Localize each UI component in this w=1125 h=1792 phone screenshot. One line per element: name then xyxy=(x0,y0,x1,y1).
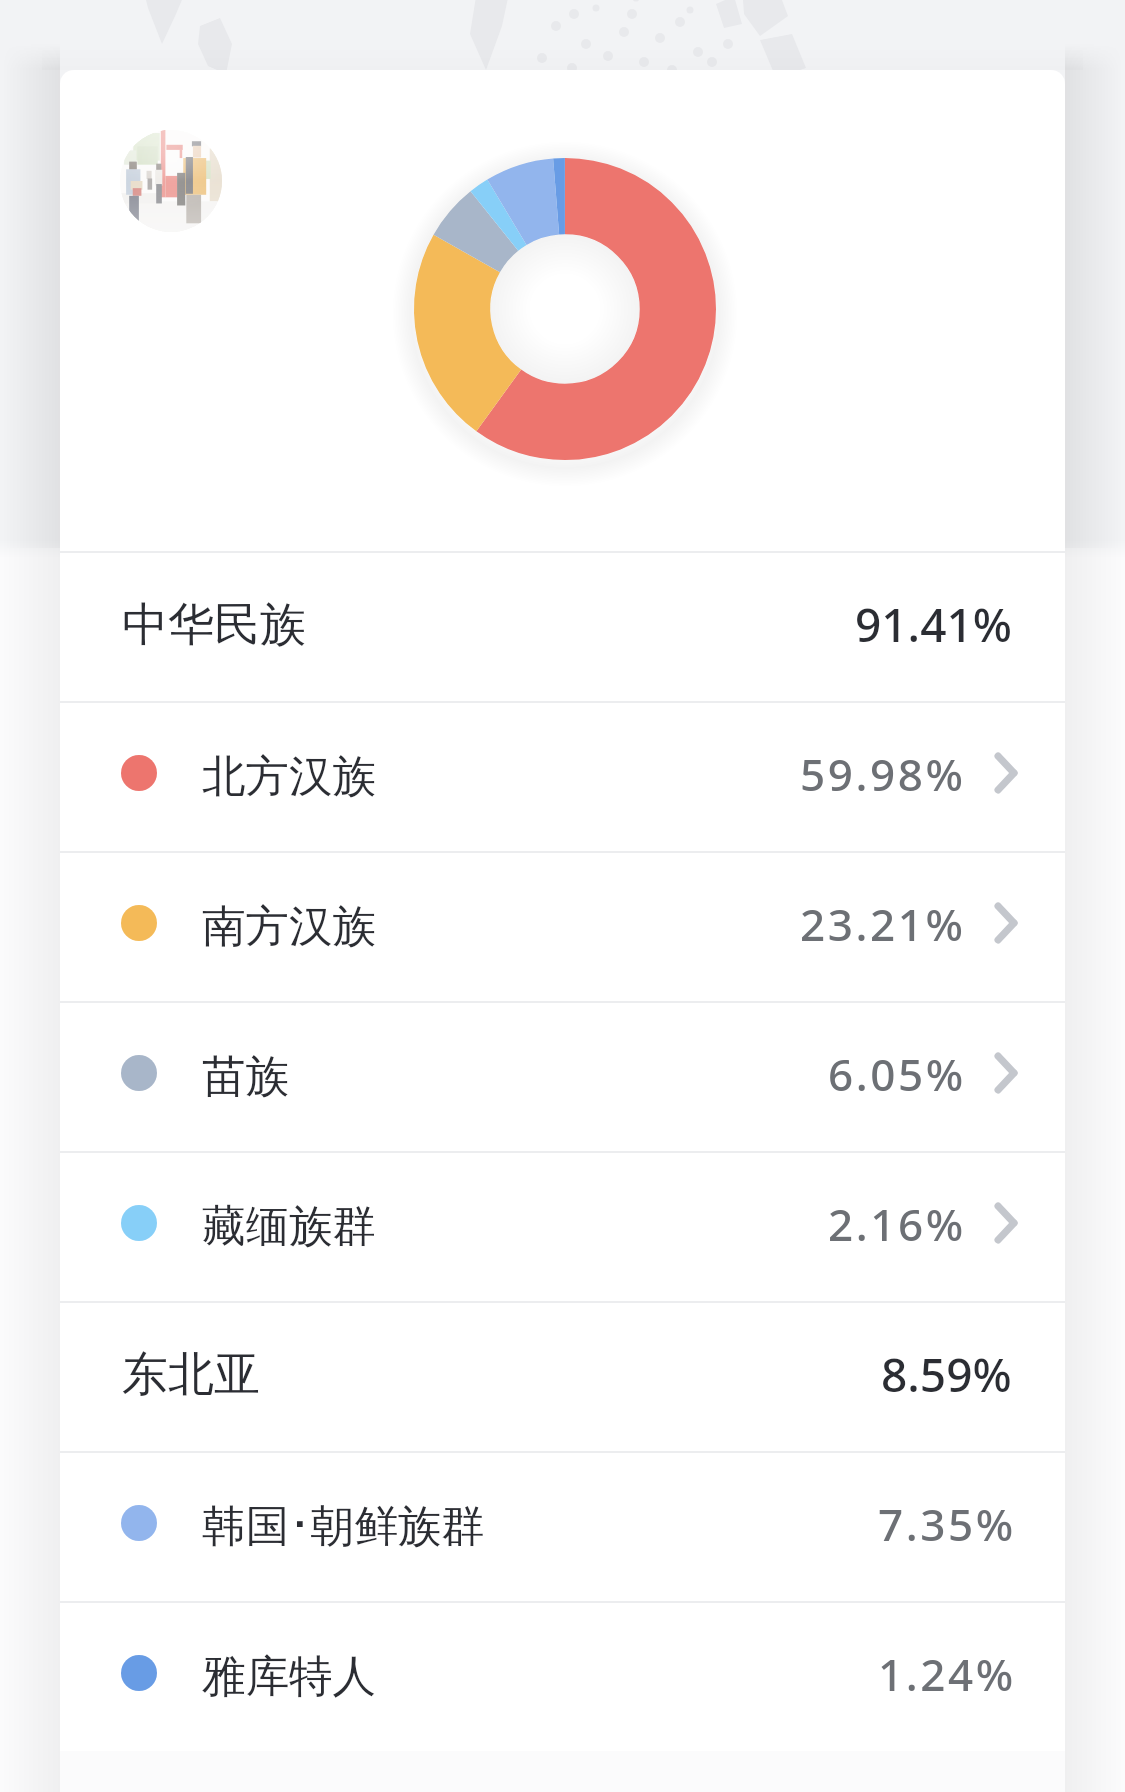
staticText: 东北亚 xyxy=(122,1346,260,1404)
staticText: 8.59% xyxy=(881,1343,1012,1406)
button[interactable]: 韩国･朝鲜族群 xyxy=(60,1453,1065,1601)
staticText: 2.16% xyxy=(828,1194,966,1254)
staticText: 1.24% xyxy=(878,1644,1016,1704)
staticText: 23.21% xyxy=(800,894,966,954)
button[interactable]: 藏缅族群 xyxy=(60,1153,1065,1301)
button[interactable]: 雅库特人 xyxy=(60,1603,1065,1751)
staticText: 6.05% xyxy=(828,1044,966,1104)
button[interactable]: 南方汉族 xyxy=(60,853,1065,1001)
staticText: 北方汉族 xyxy=(202,749,376,804)
staticText: 雅库特人 xyxy=(202,1649,376,1704)
button[interactable]: 中华民族 xyxy=(60,553,1065,701)
staticText: 91.41% xyxy=(855,593,1012,656)
staticText: 韩国･朝鲜族群 xyxy=(202,1499,485,1554)
staticText: 59.98% xyxy=(800,744,966,804)
staticText: 苗族 xyxy=(202,1049,289,1104)
button[interactable]: 苗族 xyxy=(60,1003,1065,1151)
staticText: 藏缅族群 xyxy=(202,1199,376,1254)
button[interactable]: 东北亚 xyxy=(60,1303,1065,1451)
button[interactable]: 北方汉族 xyxy=(60,703,1065,851)
staticText: 南方汉族 xyxy=(202,899,376,954)
staticText: 中华民族 xyxy=(122,596,306,654)
staticText: 7.35% xyxy=(878,1494,1016,1554)
